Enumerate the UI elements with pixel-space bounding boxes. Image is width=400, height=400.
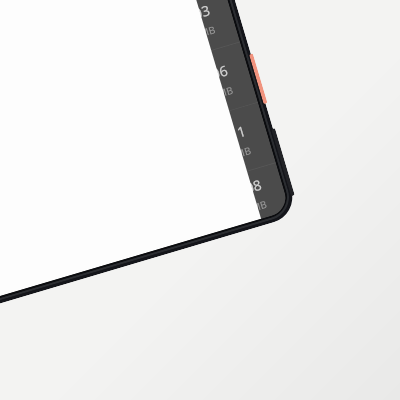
staticText: 0.35MB [215, 143, 253, 167]
button[interactable]: Rec_20220724_084124.wav [0, 0, 222, 91]
staticText: 0.26MB [230, 197, 269, 220]
button[interactable]: Rec_20220724_084101.wav [0, 103, 276, 272]
button[interactable]: Rec_20220724_084049.wav [0, 163, 290, 320]
staticText: 0.18MB [197, 83, 235, 106]
button[interactable]: Rec_20220724_084130.wav [0, 0, 204, 30]
button[interactable]: Rec_20220724_084119.wav [0, 0, 240, 151]
staticText: 0:06 [198, 61, 230, 87]
button[interactable]: Volume [271, 128, 295, 196]
staticText: 0:03 [180, 0, 212, 26]
button[interactable]: Rec_20220724_084112.wav [0, 42, 258, 211]
staticText: 0.10MB [179, 22, 217, 46]
staticText: 0:08 [232, 175, 264, 201]
staticText: 0:11 [216, 121, 248, 147]
button[interactable]: Power [249, 53, 267, 104]
staticText: Rec_20220724_084049.wav [0, 222, 103, 291]
